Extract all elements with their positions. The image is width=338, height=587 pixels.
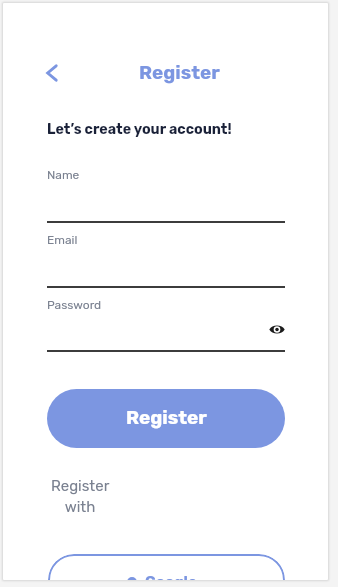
staticText: Name: [47, 168, 80, 182]
button[interactable]: Register: [47, 389, 285, 448]
button[interactable]: Email: [47, 233, 285, 288]
staticText: Let’s create your account!: [47, 121, 232, 138]
button[interactable]: Show password: [265, 318, 288, 341]
button[interactable]: Password: [47, 298, 285, 352]
staticText: Register with: [50, 477, 110, 515]
staticText: Password: [47, 298, 102, 312]
button[interactable]: Back: [36, 57, 68, 89]
staticText: Email: [47, 233, 78, 247]
staticText: Register: [139, 61, 220, 84]
button[interactable]: Name: [47, 168, 285, 223]
staticText: Register: [126, 406, 207, 429]
button[interactable]: Google: [48, 554, 285, 580]
staticText: Google: [145, 573, 197, 580]
